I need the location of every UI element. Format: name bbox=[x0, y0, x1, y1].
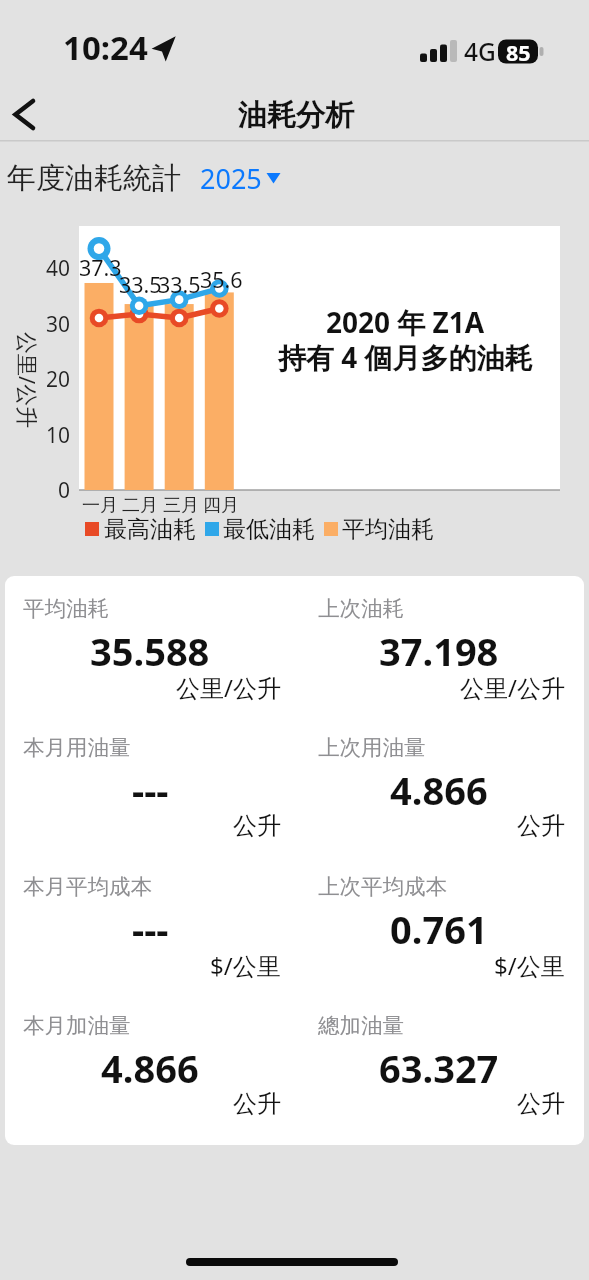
staticText: $/公里 bbox=[210, 949, 281, 982]
staticText: 本月加油量 bbox=[23, 1012, 131, 1039]
staticText: 最高油耗 bbox=[104, 515, 196, 544]
staticText: --- bbox=[132, 764, 169, 816]
staticText: 二月 bbox=[122, 494, 158, 517]
staticText: 四月 bbox=[203, 494, 239, 517]
staticText: 公升 bbox=[233, 811, 281, 841]
staticText: 63.327 bbox=[379, 1042, 499, 1094]
staticText: 油耗分析 bbox=[238, 97, 354, 134]
staticText: 上次用油量 bbox=[318, 734, 426, 761]
staticText: 0.761 bbox=[390, 903, 488, 955]
staticText: 年度油耗統計 bbox=[7, 160, 181, 197]
staticText: 公里/公升 bbox=[460, 671, 565, 704]
staticText: 0 bbox=[58, 476, 71, 505]
staticText: 2025 bbox=[200, 160, 262, 197]
staticText: --- bbox=[132, 903, 169, 955]
staticText: 10 bbox=[46, 421, 71, 450]
staticText: $/公里 bbox=[494, 949, 565, 982]
staticText: 公升 bbox=[233, 1089, 281, 1119]
staticText: 本月平均成本 bbox=[23, 873, 152, 900]
staticText: 33.5 bbox=[119, 270, 162, 299]
staticText: 平均油耗 bbox=[23, 595, 109, 622]
staticText: 35.588 bbox=[90, 625, 210, 677]
staticText: 公升 bbox=[517, 811, 565, 841]
staticText: 33.5 bbox=[158, 270, 201, 299]
staticText: 30 bbox=[46, 310, 71, 339]
staticText: 公里/公升 bbox=[13, 332, 43, 429]
staticText: 35.6 bbox=[200, 265, 243, 294]
staticText: 本月用油量 bbox=[23, 734, 131, 761]
staticText: 4.866 bbox=[101, 1042, 199, 1094]
staticText: 公里/公升 bbox=[176, 671, 281, 704]
staticText: 37.3 bbox=[79, 253, 122, 282]
staticText: 2020 年 Z1A bbox=[326, 303, 485, 341]
staticText: 上次油耗 bbox=[318, 595, 404, 622]
staticText: 4.866 bbox=[390, 764, 488, 816]
staticText: 10:24 bbox=[63, 25, 148, 70]
button[interactable] bbox=[6, 90, 50, 138]
staticText: 三月 bbox=[163, 494, 199, 517]
button[interactable] bbox=[195, 158, 290, 198]
staticText: 37.198 bbox=[379, 625, 499, 677]
staticText: 持有 4 個月多的油耗 bbox=[278, 338, 533, 376]
staticText: 平均油耗 bbox=[342, 515, 434, 544]
staticText: 40 bbox=[46, 254, 71, 283]
staticText: 4G bbox=[464, 35, 496, 68]
staticText: 公升 bbox=[517, 1089, 565, 1119]
staticText: 20 bbox=[46, 365, 71, 394]
staticText: 總加油量 bbox=[318, 1012, 404, 1039]
staticText: 85 bbox=[506, 38, 531, 67]
staticText: 一月 bbox=[82, 494, 118, 517]
staticText: 最低油耗 bbox=[223, 515, 315, 544]
staticText: 上次平均成本 bbox=[318, 873, 447, 900]
